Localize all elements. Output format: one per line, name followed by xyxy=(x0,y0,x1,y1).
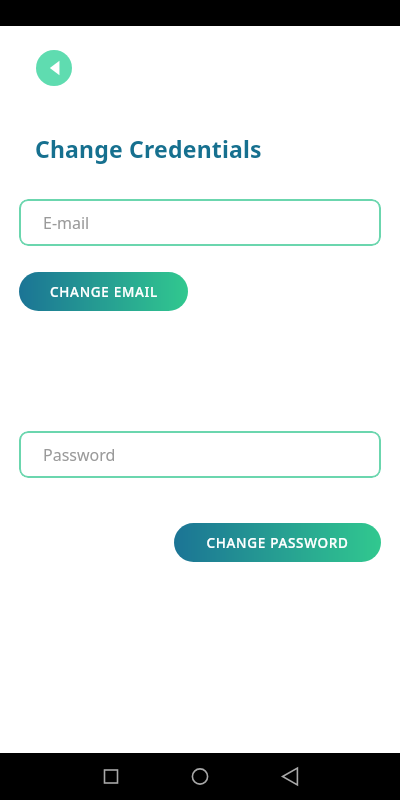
staticText: CHANGE PASSWORD xyxy=(206,534,349,552)
staticText: Password xyxy=(43,444,116,466)
staticText: Change Credentials xyxy=(35,133,262,164)
button[interactable]: Password xyxy=(19,431,381,478)
button[interactable]: CHANGE PASSWORD xyxy=(174,523,381,562)
button[interactable]: CHANGE EMAIL xyxy=(19,272,188,311)
button[interactable]: Back xyxy=(36,50,72,86)
button[interactable]: E-mail xyxy=(19,199,381,246)
staticText: CHANGE EMAIL xyxy=(50,283,158,301)
staticText: E-mail xyxy=(43,212,90,234)
